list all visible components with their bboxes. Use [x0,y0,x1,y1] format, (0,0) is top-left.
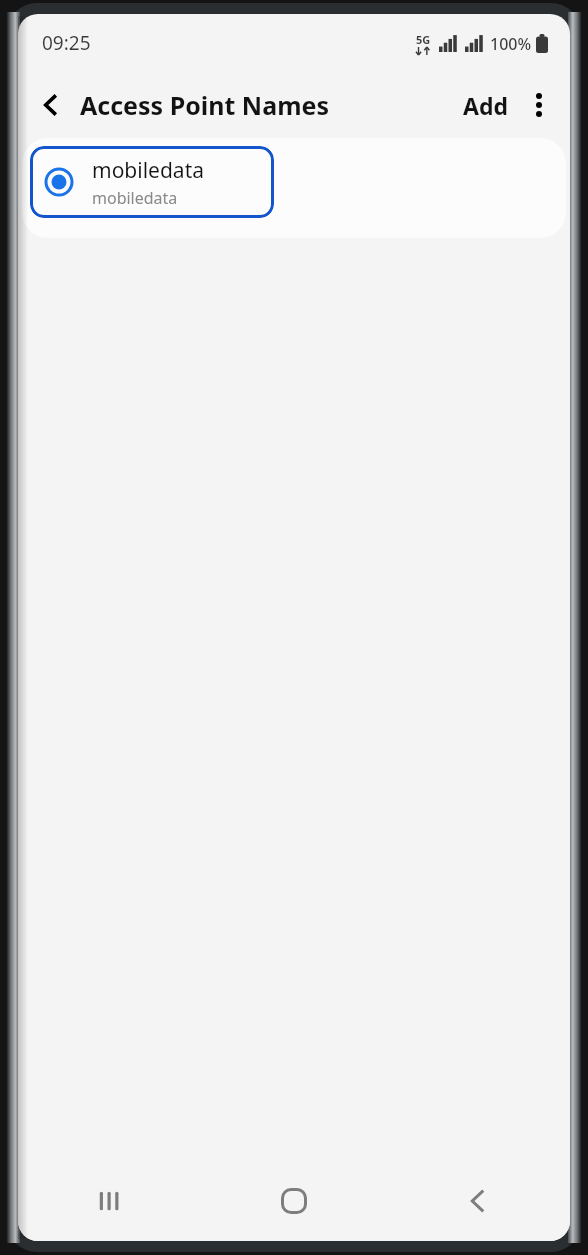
button[interactable]: Add [455,82,516,129]
button[interactable]: Back [386,1161,570,1241]
staticText: Add [463,90,508,121]
button[interactable]: Recent apps [18,1161,202,1241]
staticText: Access Point Names [80,88,330,122]
staticText: 09:25 [42,30,91,56]
button[interactable]: Navigate up [28,82,74,128]
button[interactable]: Home [202,1161,386,1241]
staticText: 100% [490,33,532,55]
button[interactable]: More options [516,82,562,128]
staticText: 5G [416,32,431,47]
button[interactable]: mobiledata [30,146,274,218]
staticText: mobiledata [92,156,204,185]
staticText: mobiledata [92,187,178,209]
